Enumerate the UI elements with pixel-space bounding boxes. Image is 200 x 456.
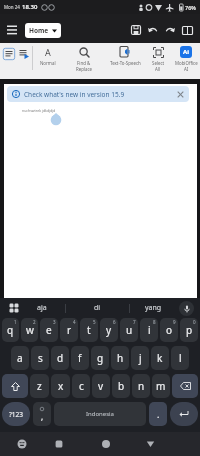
staticText: c xyxy=(79,379,84,393)
staticText: Text-To-Speech xyxy=(110,60,141,66)
staticText: e xyxy=(46,323,52,337)
button[interactable]: aja xyxy=(19,298,65,318)
button[interactable]: m xyxy=(152,374,170,398)
button[interactable]: r xyxy=(60,318,78,342)
staticText: 5 xyxy=(93,319,96,325)
button[interactable] xyxy=(131,25,141,35)
button[interactable]: c xyxy=(72,374,90,398)
button[interactable] xyxy=(182,26,193,35)
button[interactable]: A xyxy=(33,46,62,66)
button[interactable]: . xyxy=(149,402,167,426)
button[interactable] xyxy=(179,301,194,316)
button[interactable]: Indonesia xyxy=(54,402,146,426)
button[interactable]: b xyxy=(112,374,130,398)
button[interactable]: f xyxy=(71,346,89,370)
staticText: Select xyxy=(152,60,165,66)
button[interactable] xyxy=(16,438,28,450)
staticText: 18.30 xyxy=(22,3,38,11)
staticText: yang xyxy=(145,303,162,313)
button[interactable]: yang xyxy=(130,298,176,318)
button[interactable]: Ai xyxy=(172,46,200,72)
button[interactable]: Text-To-Speech xyxy=(106,46,144,66)
button[interactable]: o xyxy=(160,318,178,342)
button[interactable] xyxy=(55,440,63,448)
button[interactable] xyxy=(170,402,198,426)
staticText: Check what's new in version 15.9 xyxy=(24,90,125,99)
staticText: v xyxy=(98,379,104,393)
button[interactable]: Find & xyxy=(62,46,106,72)
staticText: aja xyxy=(37,303,47,313)
button[interactable]: d xyxy=(51,346,69,370)
staticText: A xyxy=(45,46,51,58)
staticText: k xyxy=(157,351,163,365)
staticText: Find & xyxy=(77,60,91,66)
button[interactable]: , xyxy=(33,402,51,426)
button[interactable]: Home xyxy=(25,23,61,38)
button[interactable]: t xyxy=(80,318,98,342)
staticText: f xyxy=(78,351,82,365)
staticText: t xyxy=(87,323,91,337)
button[interactable]: y xyxy=(100,318,118,342)
staticText: u xyxy=(126,323,133,337)
staticText: Normal xyxy=(40,60,56,66)
staticText: Indonesia xyxy=(86,410,114,418)
button[interactable]: Check what's new in version 15.9 xyxy=(7,86,189,102)
button[interactable]: j xyxy=(131,346,149,370)
button[interactable]: l xyxy=(171,346,189,370)
button[interactable]: a xyxy=(11,346,29,370)
staticText: a xyxy=(17,351,23,365)
staticText: l xyxy=(179,351,182,365)
button[interactable]: q xyxy=(2,318,19,342)
button[interactable] xyxy=(146,440,155,449)
button[interactable]: w xyxy=(21,318,38,342)
button[interactable]: e xyxy=(40,318,58,342)
button[interactable]: di xyxy=(66,298,129,318)
staticText: q xyxy=(7,323,14,337)
staticText: o xyxy=(166,323,173,337)
button[interactable]: p xyxy=(180,318,198,342)
staticText: g xyxy=(97,351,104,365)
staticText: All xyxy=(155,66,161,72)
button[interactable] xyxy=(18,48,30,60)
button[interactable]: s xyxy=(31,346,49,370)
button[interactable]: z xyxy=(30,374,49,398)
button[interactable] xyxy=(148,26,158,35)
button[interactable]: g xyxy=(91,346,109,370)
staticText: ?123 xyxy=(9,410,23,419)
button[interactable] xyxy=(165,26,175,35)
button[interactable]: n xyxy=(132,374,150,398)
staticText: j xyxy=(139,351,142,365)
button[interactable]: k xyxy=(151,346,169,370)
button[interactable] xyxy=(9,303,19,313)
staticText: Ai xyxy=(183,48,189,56)
button[interactable] xyxy=(2,374,28,398)
staticText: d xyxy=(57,351,64,365)
staticText: p xyxy=(186,323,193,337)
staticText: x xyxy=(58,379,64,393)
staticText: 3 xyxy=(53,319,56,325)
staticText: MobiOffice xyxy=(175,60,198,66)
staticText: Mon 24 xyxy=(4,4,20,10)
button[interactable]: i xyxy=(140,318,158,342)
staticText: z xyxy=(37,379,42,393)
button[interactable]: u xyxy=(120,318,138,342)
button[interactable] xyxy=(172,374,198,398)
staticText: n xyxy=(138,379,145,393)
staticText: 76% xyxy=(185,4,196,11)
button[interactable]: x xyxy=(51,374,70,398)
staticText: AI xyxy=(184,66,189,72)
button[interactable] xyxy=(3,48,15,60)
staticText: 8 xyxy=(153,319,156,325)
button[interactable] xyxy=(102,440,110,448)
staticText: 4 xyxy=(73,319,76,325)
button[interactable] xyxy=(177,91,184,98)
button[interactable]: ?123 xyxy=(2,402,30,426)
button[interactable]: v xyxy=(92,374,110,398)
staticText: nuchswtrek jdkdjdjd xyxy=(22,108,56,113)
staticText: 6 xyxy=(113,319,116,325)
staticText: y xyxy=(106,323,112,337)
button[interactable]: Select xyxy=(144,46,172,72)
button[interactable] xyxy=(7,25,17,35)
button[interactable]: h xyxy=(111,346,129,370)
staticText: w xyxy=(26,323,34,337)
